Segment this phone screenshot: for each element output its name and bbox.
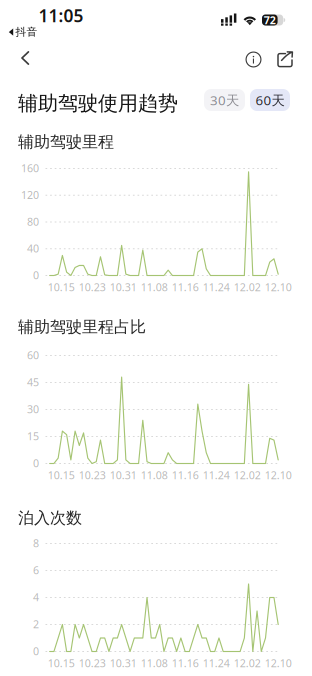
staticText: 160 xyxy=(21,161,39,175)
staticText: 10.15 xyxy=(48,280,75,294)
staticText: 10.31 xyxy=(110,280,137,294)
staticText: 12.02 xyxy=(234,468,261,482)
staticText: 6 xyxy=(33,563,39,577)
staticText: 10.23 xyxy=(79,656,106,670)
staticText: 11.24 xyxy=(203,468,230,482)
button[interactable]: Share xyxy=(268,42,302,76)
staticText: 40 xyxy=(27,241,39,255)
staticText: 12.02 xyxy=(234,656,261,670)
staticText: 60 xyxy=(27,348,39,362)
staticText: 10.31 xyxy=(110,656,137,670)
button[interactable]: Back xyxy=(0,42,46,74)
staticText: 10.15 xyxy=(48,656,75,670)
staticText: 120 xyxy=(21,188,39,202)
staticText: 0 xyxy=(33,644,39,658)
staticText: 12.10 xyxy=(265,468,292,482)
staticText: 0 xyxy=(33,268,39,282)
staticText: 30 xyxy=(27,402,39,416)
staticText: 12.10 xyxy=(265,656,292,670)
button[interactable]: 60天 xyxy=(250,89,290,111)
staticText: 10.23 xyxy=(79,280,106,294)
staticText: 10.31 xyxy=(110,468,137,482)
staticText: 泊入次数 xyxy=(18,508,82,528)
staticText: 72 xyxy=(264,13,276,27)
staticText: 0 xyxy=(33,456,39,470)
staticText: 8 xyxy=(33,536,39,550)
staticText: 11.16 xyxy=(172,656,199,670)
staticText: 30天 xyxy=(210,91,239,109)
staticText: 12.02 xyxy=(234,280,261,294)
staticText: 11:05 xyxy=(38,4,83,27)
staticText: 45 xyxy=(27,375,39,389)
staticText: 2 xyxy=(33,617,39,631)
button[interactable]: Information xyxy=(236,42,271,77)
staticText: 辅助驾驶使用趋势 xyxy=(18,91,178,116)
staticText: 11.24 xyxy=(203,656,230,670)
staticText: 11.08 xyxy=(141,280,168,294)
staticText: 4 xyxy=(33,590,39,604)
staticText: 12.10 xyxy=(265,280,292,294)
staticText: 辅助驾驶里程 xyxy=(18,132,114,152)
staticText: 11.16 xyxy=(172,468,199,482)
staticText: 11.08 xyxy=(141,468,168,482)
staticText: 11.24 xyxy=(203,280,230,294)
staticText: 11.16 xyxy=(172,280,199,294)
staticText: 辅助驾驶里程占比 xyxy=(18,317,146,337)
staticText: 60天 xyxy=(255,91,284,109)
staticText: 11.08 xyxy=(141,656,168,670)
staticText: 80 xyxy=(27,214,39,229)
staticText: 抖音 xyxy=(16,25,38,39)
staticText: 10.15 xyxy=(48,468,75,482)
button[interactable]: 30天 xyxy=(204,89,245,111)
staticText: 15 xyxy=(27,429,39,443)
staticText: 10.23 xyxy=(79,468,106,482)
